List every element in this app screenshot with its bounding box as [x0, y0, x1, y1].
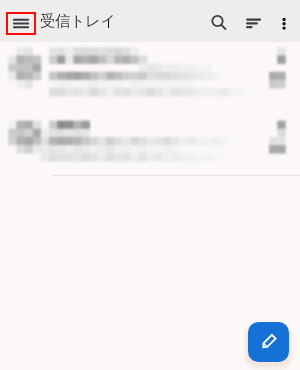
button[interactable]: Sort [242, 11, 266, 35]
button[interactable]: Menu [8, 14, 34, 33]
button[interactable]: More options [272, 11, 296, 35]
button[interactable] [0, 105, 300, 175]
button[interactable]: Search [207, 11, 231, 35]
button[interactable]: Compose [248, 322, 289, 362]
staticText: 受信トレイ [40, 12, 117, 31]
button[interactable] [0, 42, 300, 105]
